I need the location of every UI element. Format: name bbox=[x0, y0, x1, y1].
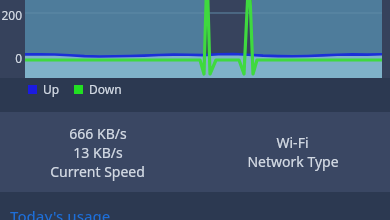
staticText: Wi-Fi bbox=[276, 133, 309, 152]
staticText: 13 KB/s bbox=[73, 143, 123, 162]
staticText: Current Speed bbox=[50, 162, 145, 181]
staticText: Down bbox=[89, 81, 122, 97]
staticText: 200 bbox=[0, 7, 22, 23]
staticText: Up bbox=[43, 81, 60, 97]
button[interactable]: Today's usage bbox=[10, 206, 111, 220]
button[interactable]: Down bbox=[74, 81, 122, 97]
button[interactable]: Up bbox=[28, 81, 60, 97]
button[interactable]: 666 KB/s bbox=[0, 112, 390, 192]
staticText: 0 bbox=[0, 50, 22, 66]
staticText: Network Type bbox=[247, 152, 339, 171]
staticText: 666 KB/s bbox=[69, 124, 127, 143]
